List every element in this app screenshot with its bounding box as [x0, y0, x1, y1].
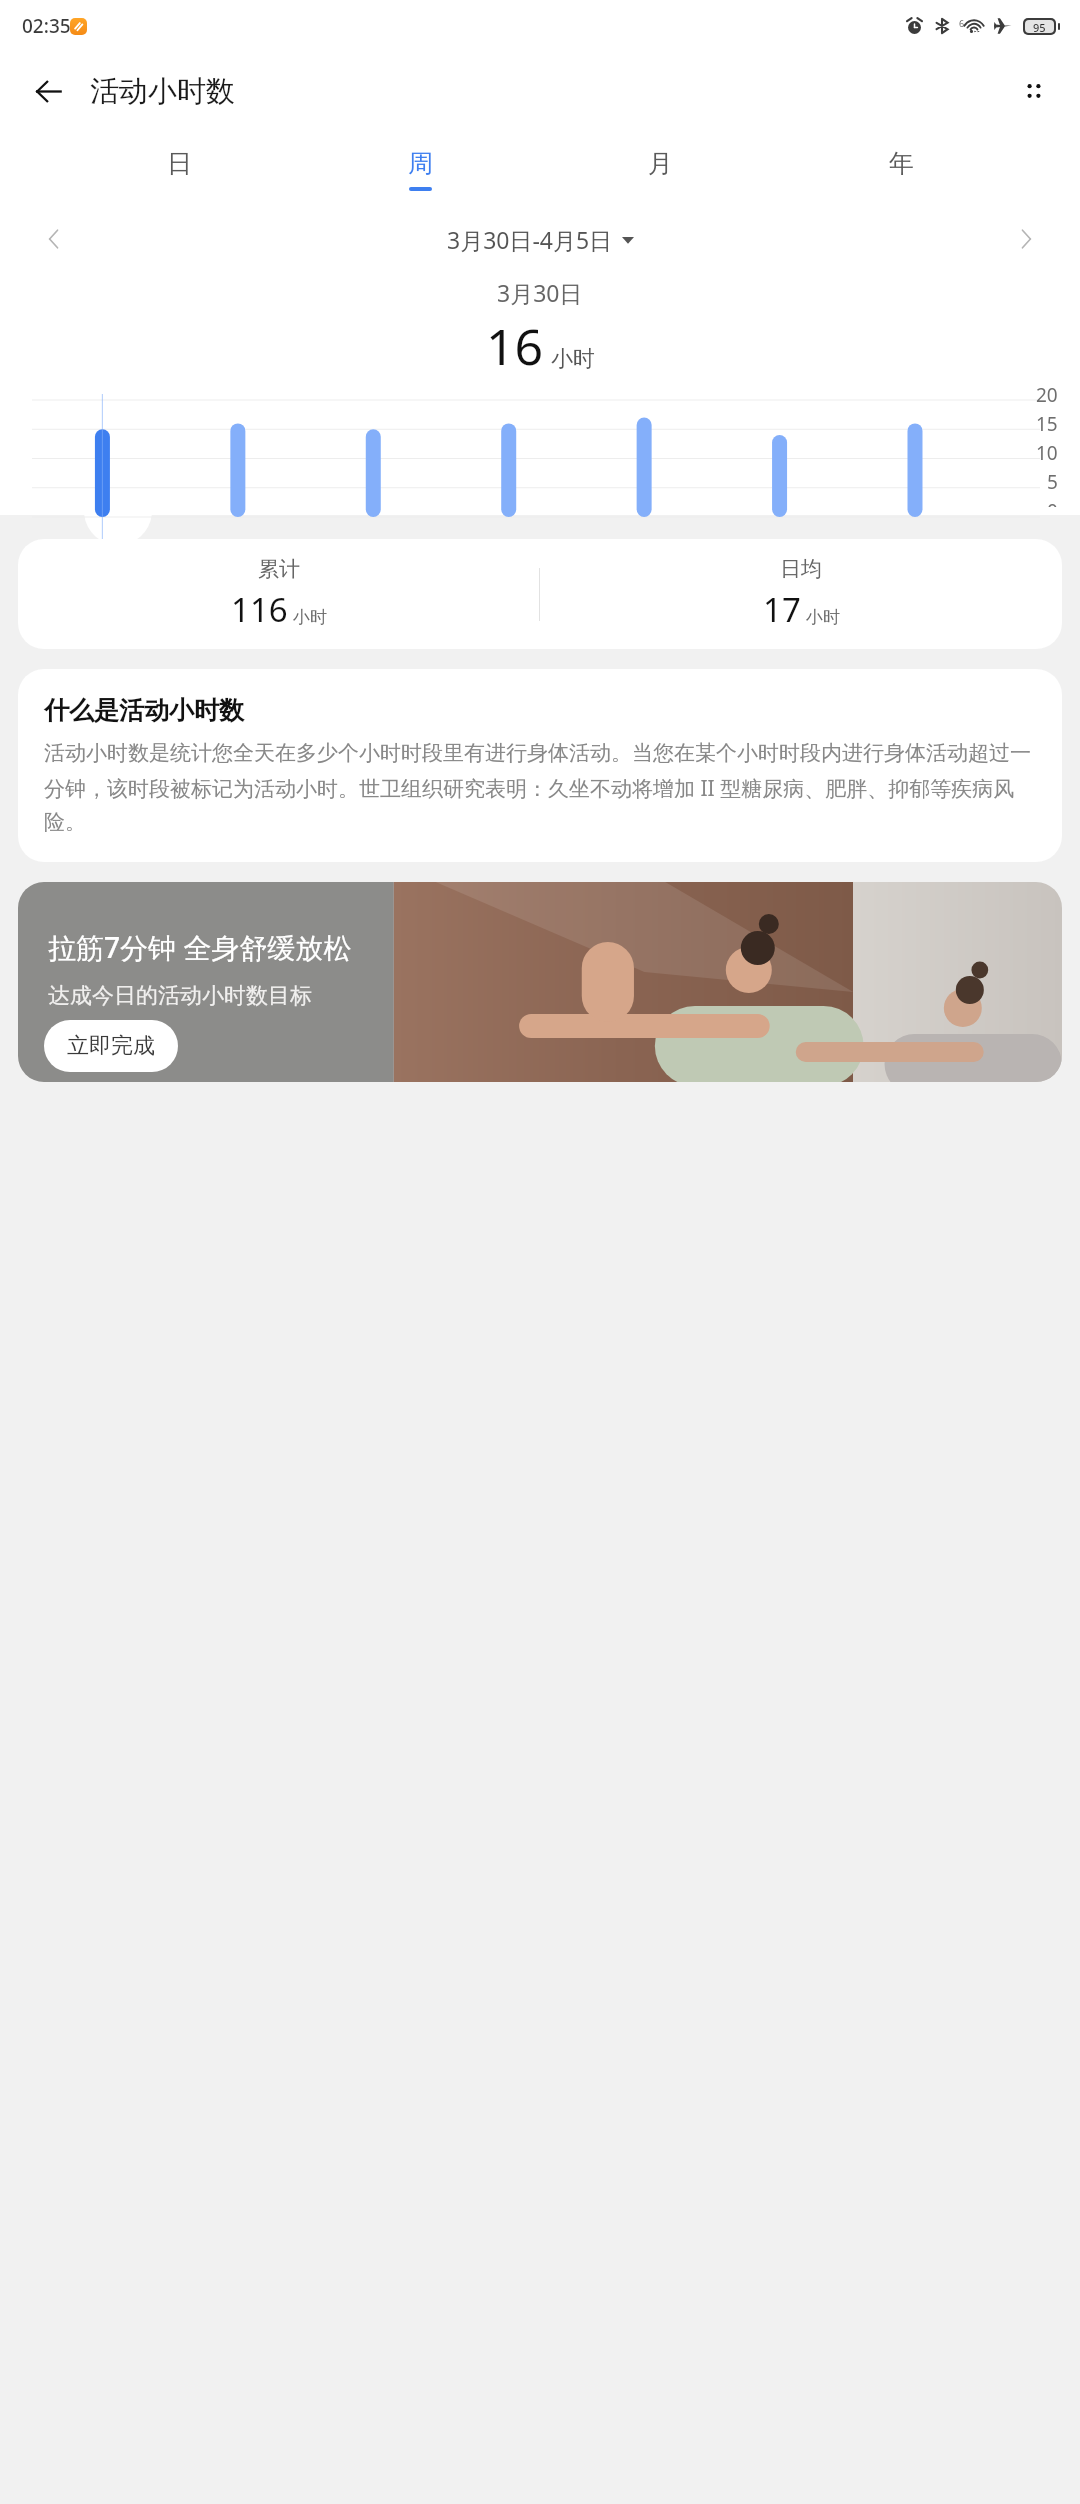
staticText: 95	[1033, 20, 1046, 33]
button[interactable]: 月	[631, 148, 689, 191]
button[interactable]: 立即完成	[44, 1020, 178, 1072]
staticText: 6	[959, 17, 965, 29]
staticText: 3月30日-4月5日	[447, 224, 613, 255]
staticText: 立即完成	[67, 1032, 155, 1060]
staticText: 小时	[806, 607, 840, 628]
staticText: 日均	[780, 556, 822, 582]
staticText: 16	[486, 312, 544, 380]
button[interactable]: 年	[872, 148, 930, 191]
button[interactable]: 返回	[22, 65, 74, 117]
button[interactable]: 下一周	[1002, 215, 1050, 263]
staticText: 5	[1047, 469, 1058, 495]
staticText: 月	[648, 148, 673, 179]
button[interactable]: 上一周	[30, 215, 78, 263]
staticText: 达成今日的活动小时数目标	[48, 982, 312, 1010]
staticText: 累计	[258, 556, 300, 582]
staticText: 15	[1036, 411, 1058, 437]
button[interactable]: 周	[391, 148, 449, 191]
button[interactable]: 什么是活动小时数	[18, 669, 1062, 862]
button[interactable]: 更多选项	[1008, 65, 1060, 117]
staticText: 小时	[293, 607, 327, 628]
staticText: 周日	[521, 583, 559, 607]
staticText: 0	[1047, 498, 1058, 507]
staticText: 3月30日	[497, 277, 583, 308]
staticText: 10	[1036, 440, 1058, 466]
staticText: 小时	[551, 345, 595, 373]
button[interactable]: 3月30日-4月5日	[447, 224, 634, 255]
staticText: 02:35	[22, 13, 71, 39]
staticText: 年	[889, 148, 914, 179]
button[interactable]: 日	[150, 148, 208, 191]
staticText: 3/30	[44, 536, 84, 562]
staticText: 17	[763, 587, 801, 632]
staticText: 什么是活动小时数	[44, 695, 244, 726]
staticText: 116	[231, 587, 288, 632]
staticText: 活动小时数	[90, 73, 235, 110]
staticText: 周	[408, 148, 433, 179]
button[interactable]: 拉筋7分钟 全身舒缓放松	[18, 882, 1062, 1082]
button[interactable]: 累计	[18, 539, 1062, 649]
staticText: 日	[167, 148, 192, 179]
staticText: 周三	[234, 583, 272, 607]
staticText: 拉筋7分钟 全身舒缓放松	[48, 928, 352, 966]
staticText: 20	[1036, 382, 1058, 408]
staticText: 活动小时数是统计您全天在多少个小时时段里有进行身体活动。当您在某个小时时段内进行…	[44, 740, 1036, 836]
